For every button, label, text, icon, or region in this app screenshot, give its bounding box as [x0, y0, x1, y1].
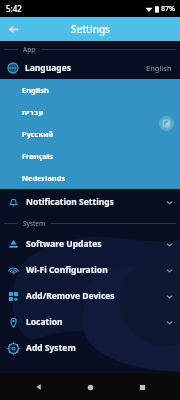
button[interactable]: Français	[0, 145, 180, 167]
button[interactable]: Add System	[0, 335, 180, 361]
staticText: 5:42	[6, 3, 22, 14]
staticText: Add System	[26, 342, 76, 354]
button[interactable]: English	[0, 79, 180, 101]
button[interactable]: Add/Remove Devices	[0, 283, 180, 309]
button[interactable]: Location	[0, 309, 180, 335]
button[interactable]: Languages	[0, 57, 180, 79]
staticText: Software Updates	[26, 238, 102, 250]
staticText: Location	[26, 316, 63, 328]
staticText: 87%	[161, 4, 175, 14]
button[interactable]: Software Updates	[0, 231, 180, 257]
button[interactable]: Back	[2, 18, 24, 40]
staticText: Français	[22, 151, 54, 161]
staticText: Notification Settings	[26, 196, 114, 208]
staticText: Wi-Fi Configuration	[26, 264, 108, 276]
staticText: Русский	[22, 129, 54, 139]
staticText: System	[23, 219, 46, 228]
button[interactable]: עברית	[0, 101, 180, 123]
staticText: עברית	[22, 108, 44, 117]
button[interactable]: Home	[77, 374, 103, 400]
button[interactable]: Wi-Fi Configuration	[0, 257, 180, 283]
button[interactable]: Back	[26, 374, 52, 400]
button[interactable]: Notification Settings	[0, 189, 180, 215]
staticText: English	[146, 63, 172, 73]
button[interactable]: Recent apps	[129, 374, 155, 400]
button[interactable]: Nederlands	[0, 167, 180, 189]
staticText: Nederlands	[22, 173, 66, 183]
staticText: Add/Remove Devices	[26, 290, 115, 302]
staticText: App	[23, 45, 36, 54]
staticText: Languages	[25, 62, 72, 74]
staticText: English	[22, 85, 49, 95]
staticText: Settings	[71, 22, 110, 36]
button[interactable]: Русский	[0, 123, 180, 145]
